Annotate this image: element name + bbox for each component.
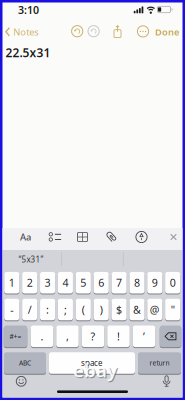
- button[interactable]: @: [147, 299, 162, 320]
- staticText: 7: [116, 276, 122, 290]
- button[interactable]: 6: [94, 272, 109, 293]
- button[interactable]: 7: [111, 272, 127, 293]
- staticText: 8: [134, 276, 140, 290]
- button[interactable]: Checklist: [48, 232, 61, 242]
- button[interactable]: -: [4, 299, 19, 320]
- staticText: :: [46, 302, 49, 317]
- button[interactable]: 9: [147, 272, 162, 293]
- button[interactable]: ): [94, 299, 109, 320]
- staticText: (: [82, 302, 85, 317]
- button[interactable]: :: [40, 299, 55, 320]
- staticText: 22.5x31: [5, 44, 50, 60]
- button[interactable]: Done: [155, 26, 179, 38]
- button[interactable]: “5x31”: [18, 254, 43, 265]
- staticText: space: [81, 358, 103, 368]
- staticText: ,: [66, 329, 69, 343]
- staticText: return: [149, 359, 169, 367]
- button[interactable]: #+=: [4, 326, 27, 347]
- button[interactable]: 4: [58, 272, 73, 293]
- staticText: 2: [27, 276, 33, 290]
- button[interactable]: Markup: [135, 230, 148, 243]
- button[interactable]: Dictate: [162, 375, 171, 387]
- button[interactable]: space: [49, 352, 135, 374]
- staticText: 5: [80, 276, 86, 290]
- button[interactable]: ": [165, 299, 180, 320]
- staticText: $: [116, 302, 122, 317]
- staticText: 3: [45, 276, 51, 290]
- button[interactable]: &: [129, 299, 144, 320]
- staticText: ": [171, 302, 175, 317]
- button[interactable]: 2: [22, 272, 37, 293]
- staticText: @: [150, 302, 160, 317]
- staticText: 0: [170, 276, 176, 290]
- staticText: .: [40, 329, 43, 343]
- staticText: &: [133, 302, 141, 317]
- button[interactable]: 3: [40, 272, 55, 293]
- button[interactable]: Format: [20, 231, 31, 243]
- staticText: ): [100, 302, 103, 317]
- button[interactable]: ’: [133, 326, 155, 347]
- button[interactable]: /: [22, 299, 37, 320]
- button[interactable]: ?: [82, 326, 104, 347]
- staticText: #+=: [9, 332, 21, 341]
- staticText: “5x31”: [18, 254, 43, 265]
- button[interactable]: (: [76, 299, 91, 320]
- button[interactable]: Delete: [160, 326, 181, 347]
- button[interactable]: .: [31, 326, 53, 347]
- staticText: ABC: [19, 359, 31, 367]
- button[interactable]: Dismiss keyboard: [170, 233, 177, 241]
- button[interactable]: $: [111, 299, 127, 320]
- button[interactable]: Undo: [71, 25, 84, 38]
- button[interactable]: Redo: [87, 25, 100, 38]
- button[interactable]: Share: [112, 24, 122, 38]
- staticText: ’: [143, 329, 145, 343]
- staticText: 1: [9, 276, 15, 290]
- button[interactable]: ;: [58, 299, 73, 320]
- button[interactable]: Table: [77, 232, 88, 242]
- button[interactable]: return: [138, 352, 181, 374]
- button[interactable]: Attach: [107, 230, 116, 243]
- staticText: Aa: [20, 231, 31, 243]
- button[interactable]: ,: [56, 326, 79, 347]
- staticText: 6: [98, 276, 104, 290]
- staticText: 4: [62, 276, 68, 290]
- staticText: ;: [64, 302, 67, 317]
- button[interactable]: Emoji: [16, 376, 27, 387]
- button[interactable]: 8: [129, 272, 144, 293]
- staticText: ebay: [74, 358, 118, 383]
- staticText: -: [10, 302, 13, 317]
- button[interactable]: ABC: [4, 352, 46, 374]
- staticText: !: [117, 329, 120, 343]
- staticText: /: [28, 302, 32, 317]
- button[interactable]: !: [107, 326, 130, 347]
- staticText: Notes: [13, 26, 38, 38]
- button[interactable]: 0: [165, 272, 180, 293]
- button[interactable]: More: [136, 25, 149, 38]
- staticText: 9: [152, 276, 158, 290]
- button[interactable]: Notes: [5, 26, 38, 38]
- staticText: 3:10: [18, 3, 39, 17]
- staticText: ?: [90, 329, 95, 343]
- button[interactable]: 5: [76, 272, 91, 293]
- button[interactable]: 1: [4, 272, 19, 293]
- staticText: ebay: [73, 358, 117, 382]
- staticText: Done: [155, 26, 179, 38]
